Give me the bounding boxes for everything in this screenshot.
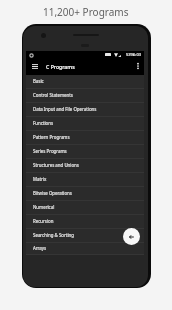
button[interactable]: Pattern Programs (26, 131, 144, 145)
staticText: Recursion (33, 218, 54, 224)
staticText: Bitwise Operations (33, 190, 72, 196)
button[interactable]: Recursion (26, 215, 144, 229)
staticText: C Programs (46, 63, 75, 70)
staticText: Searching & Sorting (33, 232, 74, 238)
button[interactable]: Searching & Sorting (26, 229, 144, 243)
staticText: Matrix (33, 176, 47, 182)
staticText: Control Statements (33, 92, 73, 98)
button[interactable]: Series Programs (26, 145, 144, 159)
button[interactable]: Numerical (26, 201, 144, 215)
button[interactable]: Data Input and File Operations (26, 103, 144, 117)
button[interactable]: Back (123, 228, 140, 245)
staticText: Arrays (33, 245, 47, 251)
button[interactable]: Basic (26, 75, 144, 89)
button[interactable]: Arrays (26, 243, 144, 255)
staticText: Structures and Unions (33, 162, 79, 168)
staticText: Functions (33, 120, 54, 126)
button[interactable]: Functions (26, 117, 144, 131)
staticText: 11,200+ Programs (43, 5, 129, 19)
button[interactable]: Structures and Unions (26, 159, 144, 173)
staticText: Basic (33, 78, 44, 84)
staticText: Pattern Programs (33, 134, 70, 140)
staticText: 53% (126, 52, 134, 57)
staticText: 6:03 (133, 52, 141, 57)
button[interactable]: More options (132, 59, 144, 75)
staticText: Data Input and File Operations (33, 106, 97, 112)
button[interactable]: Menu (26, 59, 43, 75)
button[interactable]: Bitwise Operations (26, 187, 144, 201)
staticText: Series Programs (33, 148, 67, 154)
button[interactable]: Control Statements (26, 89, 144, 103)
button[interactable]: Matrix (26, 173, 144, 187)
staticText: Numerical (33, 204, 55, 210)
